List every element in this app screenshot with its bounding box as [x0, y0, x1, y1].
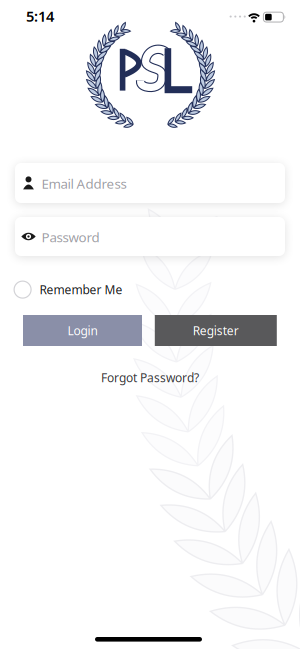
staticText: Password — [41, 228, 99, 246]
staticText: Login — [67, 322, 97, 338]
button[interactable]: Remember Me — [0, 0, 300, 649]
staticText: Email Address — [41, 175, 126, 192]
button[interactable]: Register — [0, 0, 300, 649]
staticText: 5:14 — [26, 6, 54, 26]
button[interactable]: Password — [0, 0, 300, 649]
button[interactable]: Forgot Password? — [0, 0, 300, 649]
button[interactable]: Login — [0, 0, 300, 649]
button[interactable]: Email Address — [0, 0, 300, 649]
staticText: Forgot Password? — [101, 369, 199, 385]
staticText: Register — [193, 322, 239, 338]
staticText: Remember Me — [39, 282, 122, 297]
